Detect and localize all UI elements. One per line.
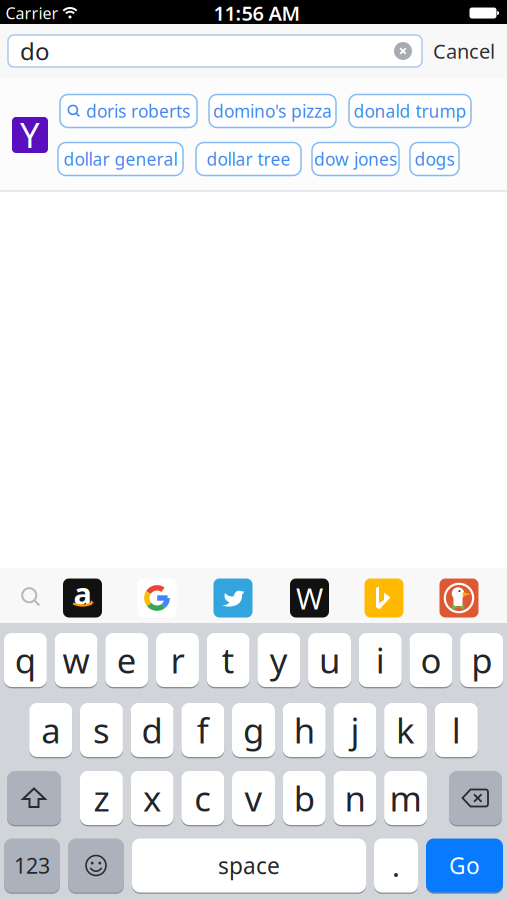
button[interactable]: 123: [4, 838, 60, 892]
staticText: 123: [14, 851, 50, 880]
staticText: u: [319, 637, 340, 683]
button[interactable]: Amazon: [63, 578, 102, 617]
button[interactable]: b: [283, 771, 326, 825]
staticText: z: [93, 775, 109, 821]
button[interactable]: Wikipedia: [290, 578, 329, 617]
button[interactable]: Bing: [364, 578, 403, 617]
button[interactable]: j: [333, 703, 376, 757]
staticText: v: [244, 775, 262, 821]
button[interactable]: s: [80, 703, 123, 757]
button[interactable]: Shift: [7, 771, 61, 825]
button[interactable]: Cancel: [416, 24, 507, 78]
staticText: dogs: [414, 147, 454, 170]
staticText: 11:56 AM: [213, 0, 300, 26]
staticText: Go: [449, 850, 480, 880]
button[interactable]: g: [232, 703, 275, 757]
staticText: b: [294, 775, 315, 821]
button[interactable]: Twitter: [213, 578, 252, 617]
staticText: m: [390, 775, 422, 821]
staticText: space: [218, 850, 280, 880]
button[interactable]: z: [80, 771, 123, 825]
staticText: c: [194, 775, 211, 821]
button[interactable]: i: [359, 633, 402, 687]
button[interactable]: v: [232, 771, 275, 825]
button[interactable]: Google: [137, 578, 176, 617]
button[interactable]: y: [257, 633, 300, 687]
staticText: Cancel: [433, 38, 495, 64]
staticText: i: [376, 637, 385, 683]
button[interactable]: dollar tree: [196, 142, 301, 175]
staticText: x: [143, 775, 161, 821]
staticText: doris roberts: [86, 99, 190, 122]
staticText: do: [20, 35, 50, 67]
button[interactable]: u: [308, 633, 351, 687]
staticText: dow jones: [314, 147, 397, 170]
staticText: e: [117, 637, 137, 683]
button[interactable]: donald trump: [349, 94, 471, 127]
staticText: .: [392, 846, 400, 885]
button[interactable]: Delete: [449, 771, 502, 825]
staticText: l: [452, 707, 461, 753]
staticText: n: [344, 775, 365, 821]
button[interactable]: p: [460, 633, 503, 687]
staticText: a: [41, 707, 60, 753]
staticText: dollar tree: [206, 147, 290, 170]
button[interactable]: k: [384, 703, 427, 757]
button[interactable]: d: [131, 703, 174, 757]
button[interactable]: e: [105, 633, 148, 687]
button[interactable]: space: [132, 838, 366, 892]
staticText: a: [73, 573, 91, 613]
button[interactable]: q: [4, 633, 47, 687]
button[interactable]: a: [29, 703, 72, 757]
button[interactable]: x: [131, 771, 174, 825]
staticText: t: [222, 637, 235, 683]
button[interactable]: f: [181, 703, 224, 757]
button[interactable]: dogs: [410, 142, 459, 175]
staticText: w: [63, 637, 90, 683]
button[interactable]: t: [207, 633, 250, 687]
staticText: y: [270, 637, 288, 683]
button[interactable]: Go: [426, 838, 503, 892]
button[interactable]: r: [156, 633, 199, 687]
button[interactable]: doris roberts: [60, 94, 197, 127]
button[interactable]: l: [435, 703, 478, 757]
button[interactable]: Emoji: [68, 838, 124, 892]
button[interactable]: .: [374, 838, 418, 892]
staticText: W: [296, 578, 323, 617]
staticText: g: [243, 707, 264, 753]
staticText: p: [471, 637, 492, 683]
button[interactable]: Clear text: [394, 42, 412, 60]
staticText: d: [142, 707, 163, 753]
button[interactable]: c: [181, 771, 224, 825]
staticText: donald trump: [353, 99, 466, 122]
staticText: o: [420, 637, 441, 683]
button[interactable]: dow jones: [312, 142, 399, 175]
staticText: k: [396, 707, 415, 753]
staticText: s: [93, 707, 110, 753]
staticText: j: [350, 707, 359, 753]
staticText: domino's pizza: [213, 99, 332, 122]
button[interactable]: n: [333, 771, 376, 825]
button[interactable]: o: [409, 633, 452, 687]
button[interactable]: m: [384, 771, 427, 825]
button[interactable]: DuckDuckGo: [439, 578, 478, 617]
staticText: q: [15, 637, 36, 683]
button[interactable]: dollar general: [58, 142, 183, 175]
staticText: f: [197, 707, 209, 753]
button[interactable]: w: [55, 633, 98, 687]
staticText: dollar general: [63, 147, 177, 170]
staticText: Y: [20, 111, 40, 157]
staticText: h: [294, 707, 315, 753]
staticText: Carrier: [5, 2, 58, 24]
button[interactable]: Yahoo: [12, 117, 48, 153]
button[interactable]: h: [283, 703, 326, 757]
staticText: r: [170, 637, 184, 683]
button[interactable]: domino's pizza: [209, 94, 336, 127]
